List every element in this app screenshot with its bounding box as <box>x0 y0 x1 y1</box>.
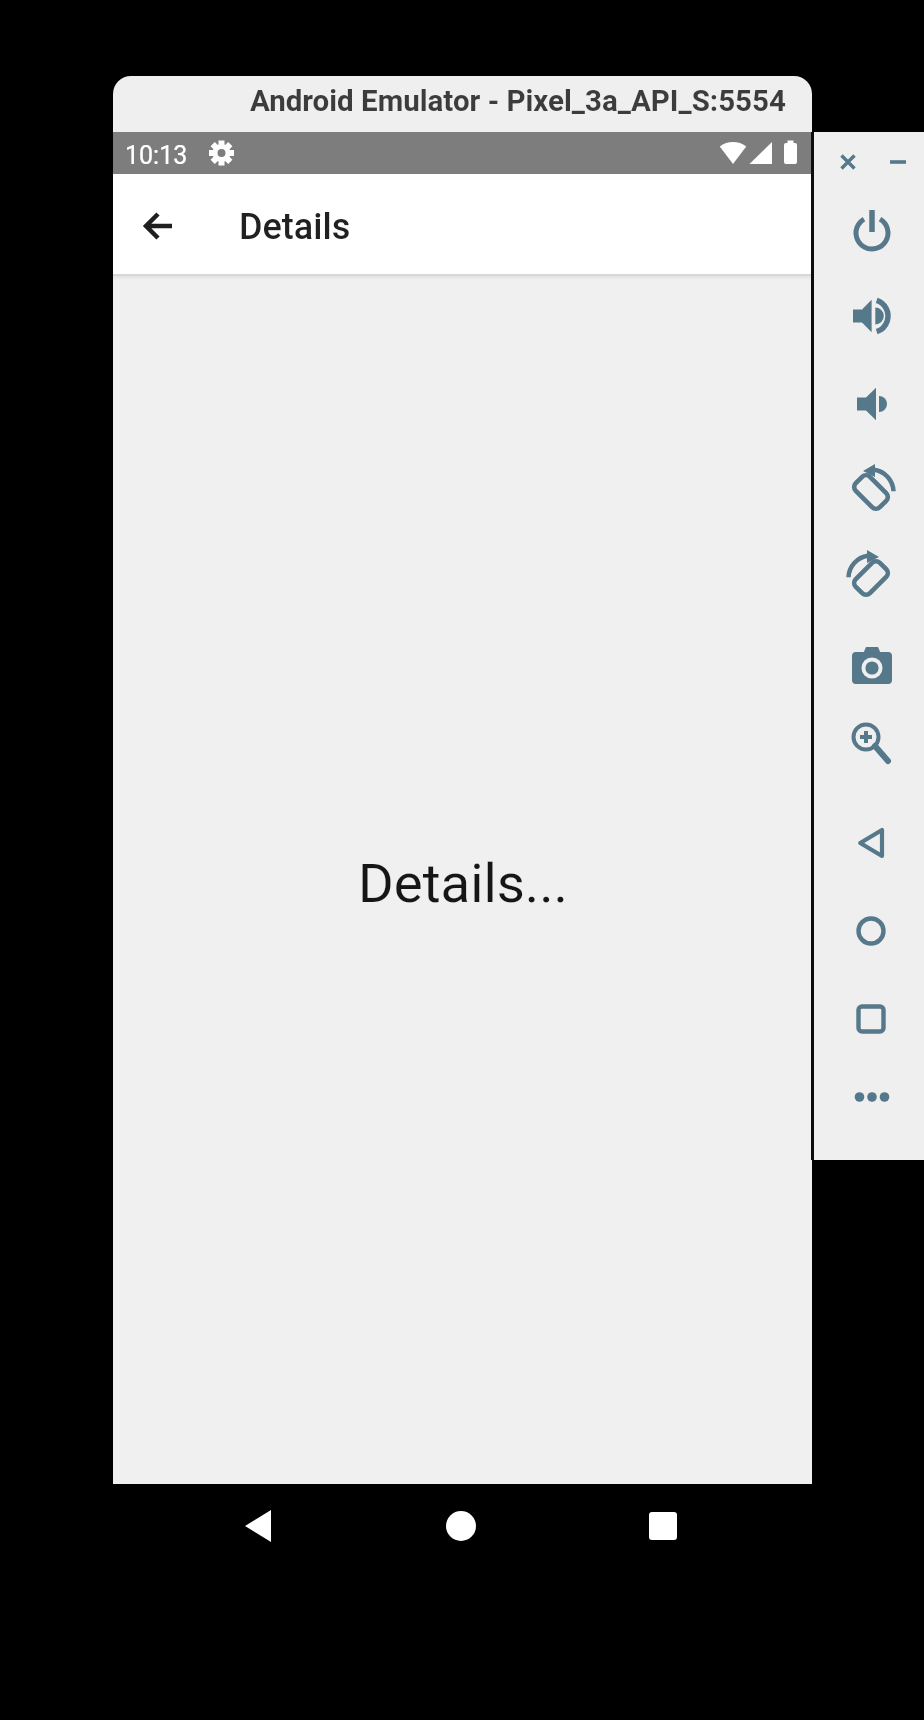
button[interactable] <box>633 1496 693 1556</box>
button[interactable] <box>841 901 901 961</box>
button[interactable] <box>841 374 901 434</box>
button[interactable] <box>841 462 901 522</box>
button[interactable] <box>842 1067 902 1127</box>
button[interactable] <box>841 286 901 346</box>
staticText: Details <box>239 206 351 248</box>
button[interactable] <box>841 989 901 1049</box>
staticText: 10:13 <box>125 141 188 170</box>
button[interactable] <box>842 201 902 261</box>
button[interactable] <box>841 813 901 873</box>
button[interactable] <box>842 637 902 697</box>
button[interactable] <box>841 548 901 608</box>
button[interactable] <box>431 1496 491 1556</box>
staticText: Android Emulator - Pixel_3a_API_S:5554 <box>250 84 786 119</box>
button[interactable] <box>131 198 187 254</box>
button[interactable] <box>818 132 878 192</box>
button[interactable] <box>840 714 900 774</box>
staticText: Details... <box>358 851 568 915</box>
button[interactable] <box>228 1496 288 1556</box>
button[interactable] <box>868 132 924 192</box>
